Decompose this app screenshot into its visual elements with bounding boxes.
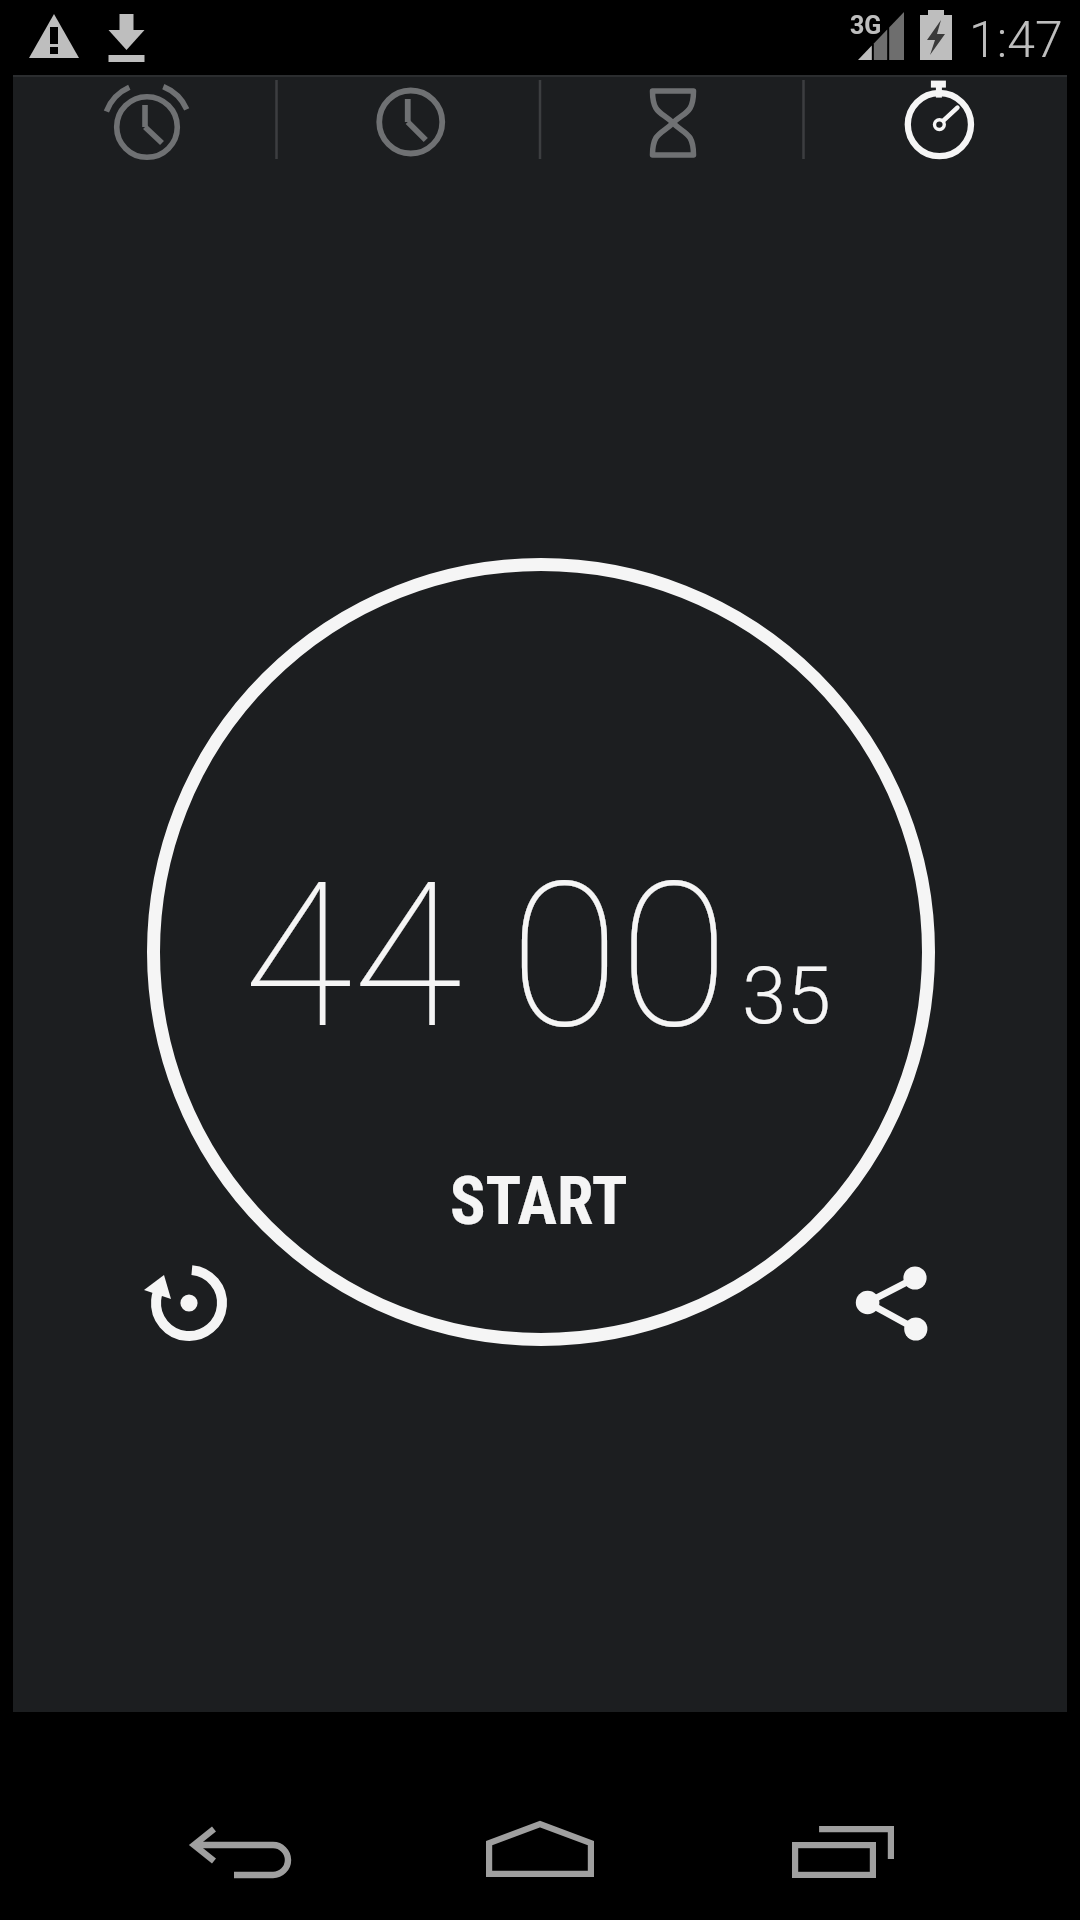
button[interactable]: Recents: [763, 1742, 923, 1902]
button[interactable]: Clock: [276, 75, 539, 177]
button[interactable]: Reset: [129, 1243, 249, 1363]
button[interactable]: Back: [160, 1742, 320, 1902]
staticText: 1:47: [969, 11, 1063, 70]
button[interactable]: Share: [835, 1243, 955, 1363]
staticText: 35: [742, 949, 831, 1043]
staticText: 3G: [850, 11, 882, 40]
button[interactable]: Stopwatch: [803, 75, 1067, 177]
staticText: 44 00: [243, 839, 729, 1073]
button[interactable]: Timer: [539, 75, 803, 177]
button[interactable]: START: [390, 1143, 690, 1263]
button[interactable]: Home: [460, 1742, 620, 1902]
button[interactable]: Alarm: [13, 75, 276, 177]
staticText: START: [450, 1163, 628, 1240]
